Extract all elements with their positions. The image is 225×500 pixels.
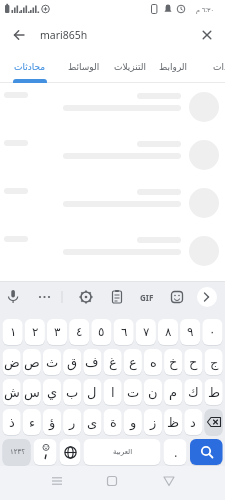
staticText: ٥ bbox=[98, 325, 105, 339]
staticText: ض bbox=[4, 355, 20, 370]
button[interactable]: ط bbox=[205, 379, 223, 405]
button[interactable]: ٩ bbox=[180, 319, 200, 345]
button[interactable]: ب bbox=[63, 379, 81, 405]
staticText: د bbox=[190, 415, 196, 430]
staticText: ص bbox=[24, 355, 40, 370]
staticText: ذ bbox=[9, 415, 15, 430]
button[interactable] bbox=[8, 24, 30, 46]
button[interactable]: ١ bbox=[3, 319, 23, 345]
staticText: ح bbox=[189, 355, 198, 370]
button[interactable]: GIF bbox=[138, 289, 156, 305]
button[interactable]: ء bbox=[23, 409, 41, 435]
staticText: ؤ bbox=[49, 415, 56, 430]
staticText: GIF bbox=[140, 292, 154, 303]
button[interactable]: غ bbox=[104, 349, 122, 375]
staticText: ت bbox=[127, 385, 140, 400]
staticText: محادثات bbox=[14, 62, 46, 72]
button[interactable]: . bbox=[164, 439, 187, 465]
button[interactable]: ه bbox=[144, 349, 162, 375]
button[interactable] bbox=[60, 439, 81, 465]
button[interactable]: ى bbox=[83, 409, 101, 435]
button[interactable]: ش bbox=[3, 379, 21, 405]
button[interactable]: ؤ bbox=[43, 409, 61, 435]
staticText: ب bbox=[66, 385, 79, 400]
staticText: ا bbox=[111, 385, 115, 400]
staticText: ل bbox=[87, 385, 97, 400]
staticText: ي bbox=[47, 385, 58, 400]
button[interactable]: ا bbox=[104, 379, 122, 405]
button[interactable]: الروابط bbox=[153, 56, 193, 78]
button[interactable] bbox=[189, 140, 219, 170]
button[interactable]: ج bbox=[205, 349, 223, 375]
button[interactable]: ت bbox=[124, 379, 142, 405]
staticText: ك bbox=[188, 385, 199, 400]
button[interactable]: الوسائط bbox=[64, 56, 104, 78]
button[interactable]: ة bbox=[104, 409, 122, 435]
button[interactable]: ع bbox=[124, 349, 142, 375]
button[interactable]: ٠ bbox=[202, 319, 222, 345]
button[interactable]: العربية bbox=[84, 439, 161, 465]
staticText: ى bbox=[87, 415, 98, 430]
staticText: ع bbox=[129, 355, 137, 370]
staticText: ة bbox=[110, 415, 117, 430]
button[interactable]: التنزيلات bbox=[108, 56, 152, 78]
button[interactable]: ث bbox=[43, 349, 61, 375]
staticText: ٤ bbox=[76, 325, 83, 339]
button[interactable]: د bbox=[184, 409, 202, 435]
button[interactable]: المستندات bbox=[213, 56, 225, 78]
button[interactable]: ٧ bbox=[136, 319, 156, 345]
button[interactable]: م bbox=[164, 379, 182, 405]
staticText: غ bbox=[109, 355, 117, 370]
button[interactable]: و bbox=[124, 409, 142, 435]
button[interactable]: ذ bbox=[3, 409, 21, 435]
button[interactable] bbox=[34, 439, 57, 465]
staticText: ٦:٣٠ م bbox=[196, 5, 214, 14]
button[interactable]: ص bbox=[23, 349, 41, 375]
button[interactable]: ز bbox=[144, 409, 162, 435]
button[interactable]: س bbox=[23, 379, 41, 405]
button[interactable]: ل bbox=[83, 379, 101, 405]
button[interactable]: ح bbox=[184, 349, 202, 375]
staticText: التنزيلات bbox=[114, 62, 146, 72]
button[interactable]: ف bbox=[83, 349, 101, 375]
button[interactable] bbox=[196, 24, 218, 46]
button[interactable]: ٨ bbox=[158, 319, 178, 345]
button[interactable]: محادثات bbox=[10, 56, 50, 78]
button[interactable]: ظ bbox=[164, 409, 182, 435]
staticText: ه bbox=[150, 355, 157, 370]
button[interactable] bbox=[159, 471, 179, 491]
button[interactable] bbox=[190, 439, 223, 465]
staticText: و bbox=[130, 415, 137, 430]
button[interactable]: ك bbox=[184, 379, 202, 405]
staticText: ث bbox=[46, 355, 59, 370]
button[interactable]: ؟١٢٣ bbox=[3, 439, 31, 465]
staticText: mari865h bbox=[40, 28, 88, 42]
button[interactable]: ٤ bbox=[69, 319, 89, 345]
staticText: خ bbox=[169, 355, 178, 370]
button[interactable]: ٦ bbox=[114, 319, 134, 345]
button[interactable]: خ bbox=[164, 349, 182, 375]
button[interactable] bbox=[189, 236, 219, 266]
staticText: الوسائط bbox=[68, 62, 100, 72]
button[interactable] bbox=[47, 471, 67, 491]
button[interactable] bbox=[189, 92, 219, 122]
button[interactable]: ي bbox=[43, 379, 61, 405]
button[interactable] bbox=[205, 409, 223, 435]
button[interactable]: ض bbox=[3, 349, 21, 375]
button[interactable]: ٣ bbox=[47, 319, 67, 345]
button[interactable]: ق bbox=[63, 349, 81, 375]
staticText: ن bbox=[148, 385, 158, 400]
staticText: ٦ bbox=[121, 325, 128, 339]
button[interactable]: ن bbox=[144, 379, 162, 405]
button[interactable]: ٥ bbox=[91, 319, 111, 345]
button[interactable] bbox=[102, 471, 122, 491]
staticText: ٠ bbox=[209, 325, 216, 339]
staticText: ؟١٢٣ bbox=[10, 448, 25, 456]
button[interactable]: ٢ bbox=[25, 319, 45, 345]
staticText: الروابط bbox=[159, 62, 188, 72]
button[interactable]: ر bbox=[63, 409, 81, 435]
button[interactable] bbox=[189, 188, 219, 218]
staticText: ط bbox=[208, 385, 221, 400]
staticText: ء bbox=[29, 415, 36, 430]
staticText: ٧ bbox=[143, 325, 150, 339]
